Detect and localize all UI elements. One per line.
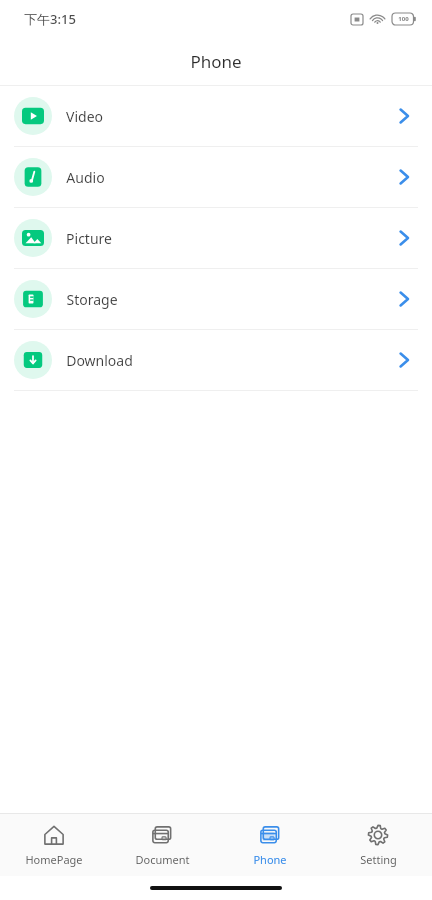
staticText: Phone: [190, 50, 242, 73]
staticText: Phone: [253, 852, 287, 867]
staticText: Picture: [66, 229, 112, 248]
button[interactable]: Audio: [0, 147, 432, 207]
staticText: Document: [135, 852, 190, 867]
staticText: Download: [66, 351, 133, 370]
staticText: Audio: [66, 168, 105, 187]
staticText: Storage: [66, 290, 118, 309]
staticText: HomePage: [25, 852, 83, 867]
button[interactable]: Setting: [324, 814, 432, 876]
button[interactable]: Storage: [0, 269, 432, 329]
staticText: 100: [398, 15, 409, 23]
button[interactable]: Video: [0, 86, 432, 146]
button[interactable]: Phone: [216, 814, 324, 876]
staticText: Setting: [360, 852, 397, 867]
button[interactable]: Document: [108, 814, 216, 876]
staticText: Video: [66, 107, 103, 126]
button[interactable]: HomePage: [0, 814, 108, 876]
staticText: 下午3:15: [24, 10, 76, 28]
button[interactable]: Picture: [0, 208, 432, 268]
button[interactable]: Download: [0, 330, 432, 390]
